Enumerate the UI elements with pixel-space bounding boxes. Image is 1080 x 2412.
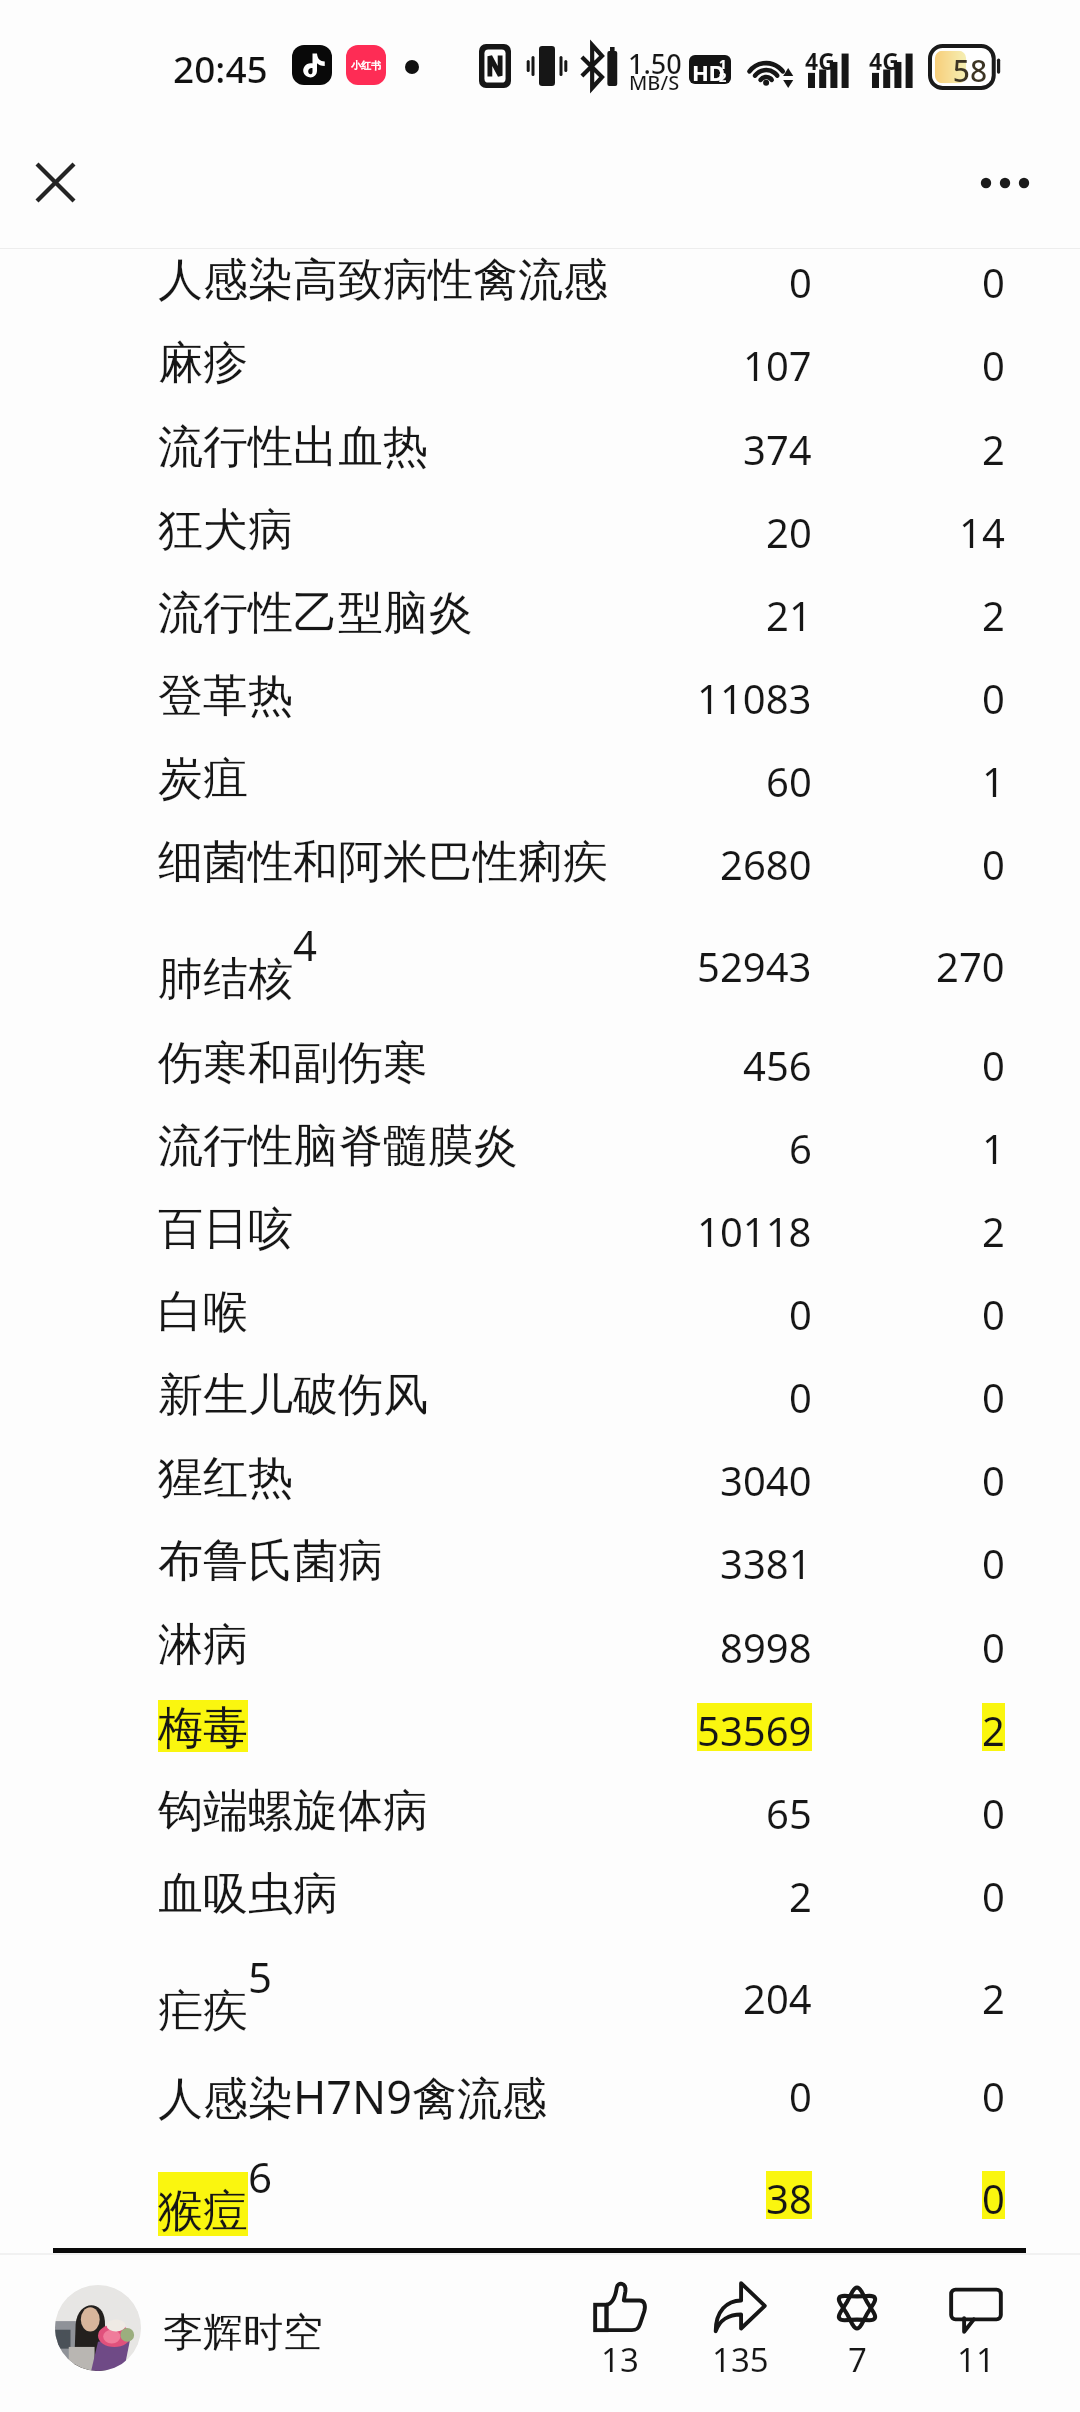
button[interactable]: Favorite <box>799 2272 915 2396</box>
staticText: 21 <box>766 588 812 636</box>
staticText: 11083 <box>697 671 812 719</box>
staticText: MB/S <box>629 69 680 96</box>
staticText: HD <box>692 57 725 84</box>
staticText: 374 <box>743 422 812 470</box>
button[interactable]: Close <box>6 133 104 231</box>
button[interactable]: 淋病 <box>0 1611 1080 1675</box>
button[interactable]: Like <box>562 2272 678 2396</box>
staticText: 1 <box>982 1121 1005 1169</box>
staticText: 3040 <box>720 1453 812 1501</box>
staticText: 细菌性和阿米巴性痢疾 <box>158 834 608 891</box>
button[interactable]: 登革热 <box>0 662 1080 726</box>
button[interactable]: 麻疹 <box>0 329 1080 393</box>
staticText: 流行性乙型脑炎 <box>158 585 473 642</box>
staticText: 2 <box>982 1971 1005 2019</box>
staticText: 0 <box>982 671 1005 719</box>
staticText: 狂犬病 <box>158 502 293 559</box>
staticText: 淋病 <box>158 1617 248 1674</box>
staticText: 2 <box>982 1204 1005 1252</box>
button[interactable]: Author avatar <box>55 2285 141 2371</box>
staticText: 人感染高致病性禽流感 <box>158 252 608 309</box>
staticText: 2 <box>789 1869 812 1917</box>
staticText: 38 <box>766 2171 812 2219</box>
button[interactable]: 伤寒和副伤寒 <box>0 1029 1080 1093</box>
staticText: 0 <box>982 2069 1005 2117</box>
button[interactable]: 李辉时空 <box>163 2307 323 2357</box>
staticText: 肺结核 <box>158 951 293 1008</box>
button[interactable]: 布鲁氏菌病 <box>0 1527 1080 1591</box>
staticText: 0 <box>789 255 812 303</box>
staticText: 270 <box>936 939 1005 987</box>
staticText: 小红书 <box>351 59 381 72</box>
button[interactable]: 疟疾 <box>0 1977 1080 2041</box>
staticText: 血吸虫病 <box>158 1866 338 1923</box>
staticText: 4G <box>805 45 835 76</box>
staticText: 4 <box>293 916 318 973</box>
button[interactable]: 流行性出血热 <box>0 413 1080 477</box>
staticText: 0 <box>982 1869 1005 1917</box>
button[interactable]: 血吸虫病 <box>0 1860 1080 1924</box>
staticText: 疟疾 <box>158 1983 248 2040</box>
staticText: 0 <box>982 1370 1005 1418</box>
button[interactable]: 流行性脑脊髓膜炎 <box>0 1112 1080 1176</box>
staticText: 0 <box>789 1370 812 1418</box>
staticText: 2 <box>982 422 1005 470</box>
staticText: 梅毒 <box>158 1700 248 1757</box>
button[interactable]: 狂犬病 <box>0 496 1080 560</box>
button[interactable]: 肺结核 <box>0 945 1080 1009</box>
staticText: 11 <box>957 2337 995 2382</box>
button[interactable]: 猩红热 <box>0 1444 1080 1508</box>
staticText: 13 <box>601 2337 639 2382</box>
button[interactable]: 白喉 <box>0 1278 1080 1342</box>
staticText: 白喉 <box>158 1284 248 1341</box>
button[interactable]: 人感染H7N9禽流感 <box>0 2060 1080 2124</box>
button[interactable]: Comment <box>918 2272 1034 2396</box>
staticText: 猩红热 <box>158 1450 293 1507</box>
staticText: 52943 <box>697 939 812 987</box>
staticText: 登革热 <box>158 668 293 725</box>
button[interactable]: 流行性乙型脑炎 <box>0 579 1080 643</box>
staticText: 3381 <box>720 1536 812 1584</box>
staticText: 炭疽 <box>158 751 248 808</box>
staticText: 0 <box>982 1786 1005 1834</box>
staticText: 钩端螺旋体病 <box>158 1783 428 1840</box>
staticText: 0 <box>982 255 1005 303</box>
button[interactable]: 梅毒 <box>0 1694 1080 1758</box>
staticText: 5 <box>248 1948 273 2005</box>
button[interactable]: More options <box>955 140 1055 226</box>
staticText: 0 <box>982 1453 1005 1501</box>
staticText: 20 <box>766 505 812 553</box>
staticText: 0 <box>982 338 1005 386</box>
staticText: 135 <box>712 2337 769 2382</box>
staticText: 1.50 <box>628 45 682 82</box>
staticText: 0 <box>982 1038 1005 1086</box>
staticText: 新生儿破伤风 <box>158 1367 428 1424</box>
staticText: 204 <box>743 1971 812 2019</box>
button[interactable]: Share <box>682 2272 798 2396</box>
staticText: 6 <box>789 1121 812 1169</box>
staticText: 0 <box>982 1620 1005 1668</box>
button[interactable]: 钩端螺旋体病 <box>0 1777 1080 1841</box>
staticText: 2680 <box>720 837 812 885</box>
button[interactable]: 炭疽 <box>0 745 1080 809</box>
staticText: 猴痘 <box>158 2183 248 2240</box>
staticText: 0 <box>789 1287 812 1335</box>
staticText: 0 <box>982 1287 1005 1335</box>
staticText: 0 <box>982 1536 1005 1584</box>
staticText: 0 <box>982 837 1005 885</box>
button[interactable]: 百日咳 <box>0 1195 1080 1259</box>
staticText: 65 <box>766 1786 812 1834</box>
button[interactable]: 猴痘 <box>0 2177 1080 2241</box>
button[interactable]: 人感染高致病性禽流感 <box>0 246 1080 310</box>
staticText: 2 <box>719 68 727 84</box>
staticText: 百日咳 <box>158 1201 293 1258</box>
button[interactable]: 细菌性和阿米巴性痢疾 <box>0 828 1080 892</box>
button[interactable]: 新生儿破伤风 <box>0 1361 1080 1425</box>
staticText: 107 <box>743 338 812 386</box>
staticText: 6 <box>248 2148 273 2205</box>
staticText: 伤寒和副伤寒 <box>158 1035 428 1092</box>
staticText: 60 <box>766 754 812 802</box>
staticText: 7 <box>848 2337 867 2382</box>
staticText: 456 <box>743 1038 812 1086</box>
staticText: 0 <box>982 2171 1005 2219</box>
